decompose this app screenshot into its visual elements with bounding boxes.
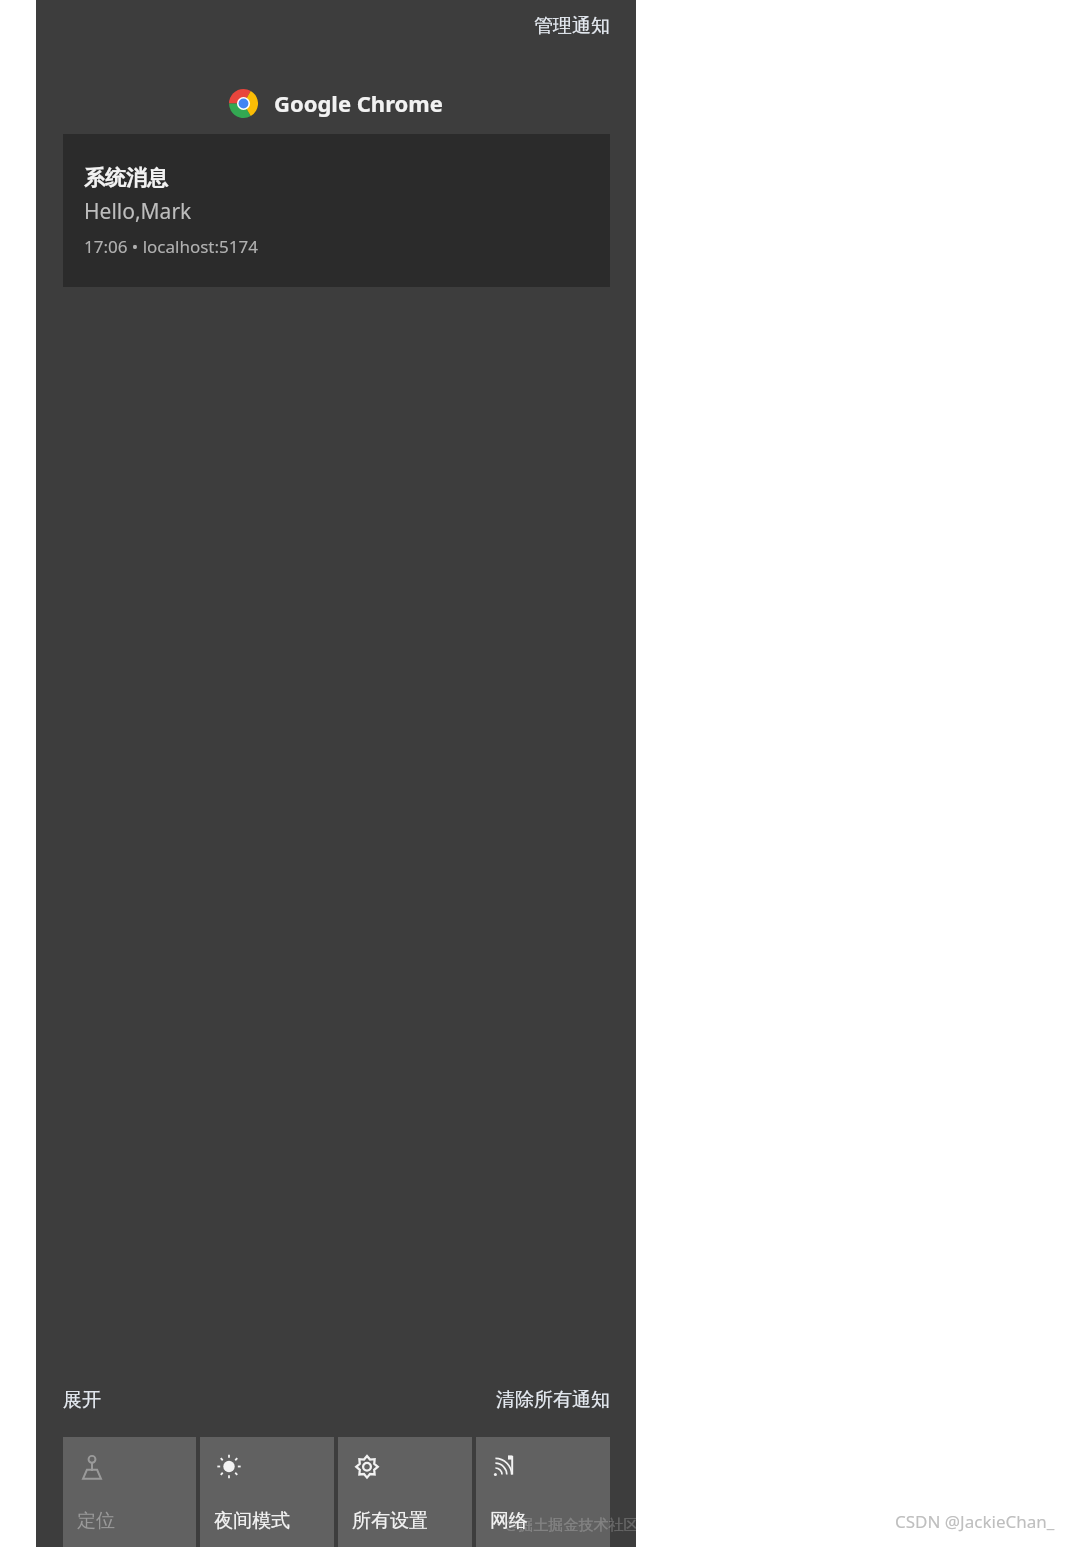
staticText: 系统消息 <box>84 165 168 191</box>
staticText: 17:06 • localhost:5174 <box>84 235 258 258</box>
staticText: 展开 <box>63 1388 101 1412</box>
staticText: CSDN @JackieChan_ <box>895 1510 1055 1533</box>
staticText: Google Chrome <box>274 88 443 118</box>
button[interactable]: 网络 <box>476 1437 610 1547</box>
button[interactable]: 所有设置 <box>338 1437 472 1547</box>
staticText: 网络 <box>490 1509 528 1533</box>
staticText: @掘土掘金技术社区 <box>505 1514 639 1534</box>
button[interactable]: 定位 <box>63 1437 196 1547</box>
button[interactable]: 管理通知 <box>530 10 614 42</box>
staticText: 夜间模式 <box>214 1509 290 1533</box>
button[interactable]: 清除所有通知 <box>494 1382 612 1418</box>
button[interactable]: 展开 <box>61 1382 103 1418</box>
button[interactable]: 系统消息 <box>63 134 610 287</box>
button[interactable]: Google Chrome <box>36 88 636 118</box>
staticText: 管理通知 <box>534 14 610 38</box>
button[interactable]: 夜间模式 <box>200 1437 334 1547</box>
staticText: 清除所有通知 <box>496 1388 610 1412</box>
staticText: 所有设置 <box>352 1509 428 1533</box>
staticText: Hello,Mark <box>84 197 192 226</box>
staticText: 定位 <box>77 1509 115 1533</box>
